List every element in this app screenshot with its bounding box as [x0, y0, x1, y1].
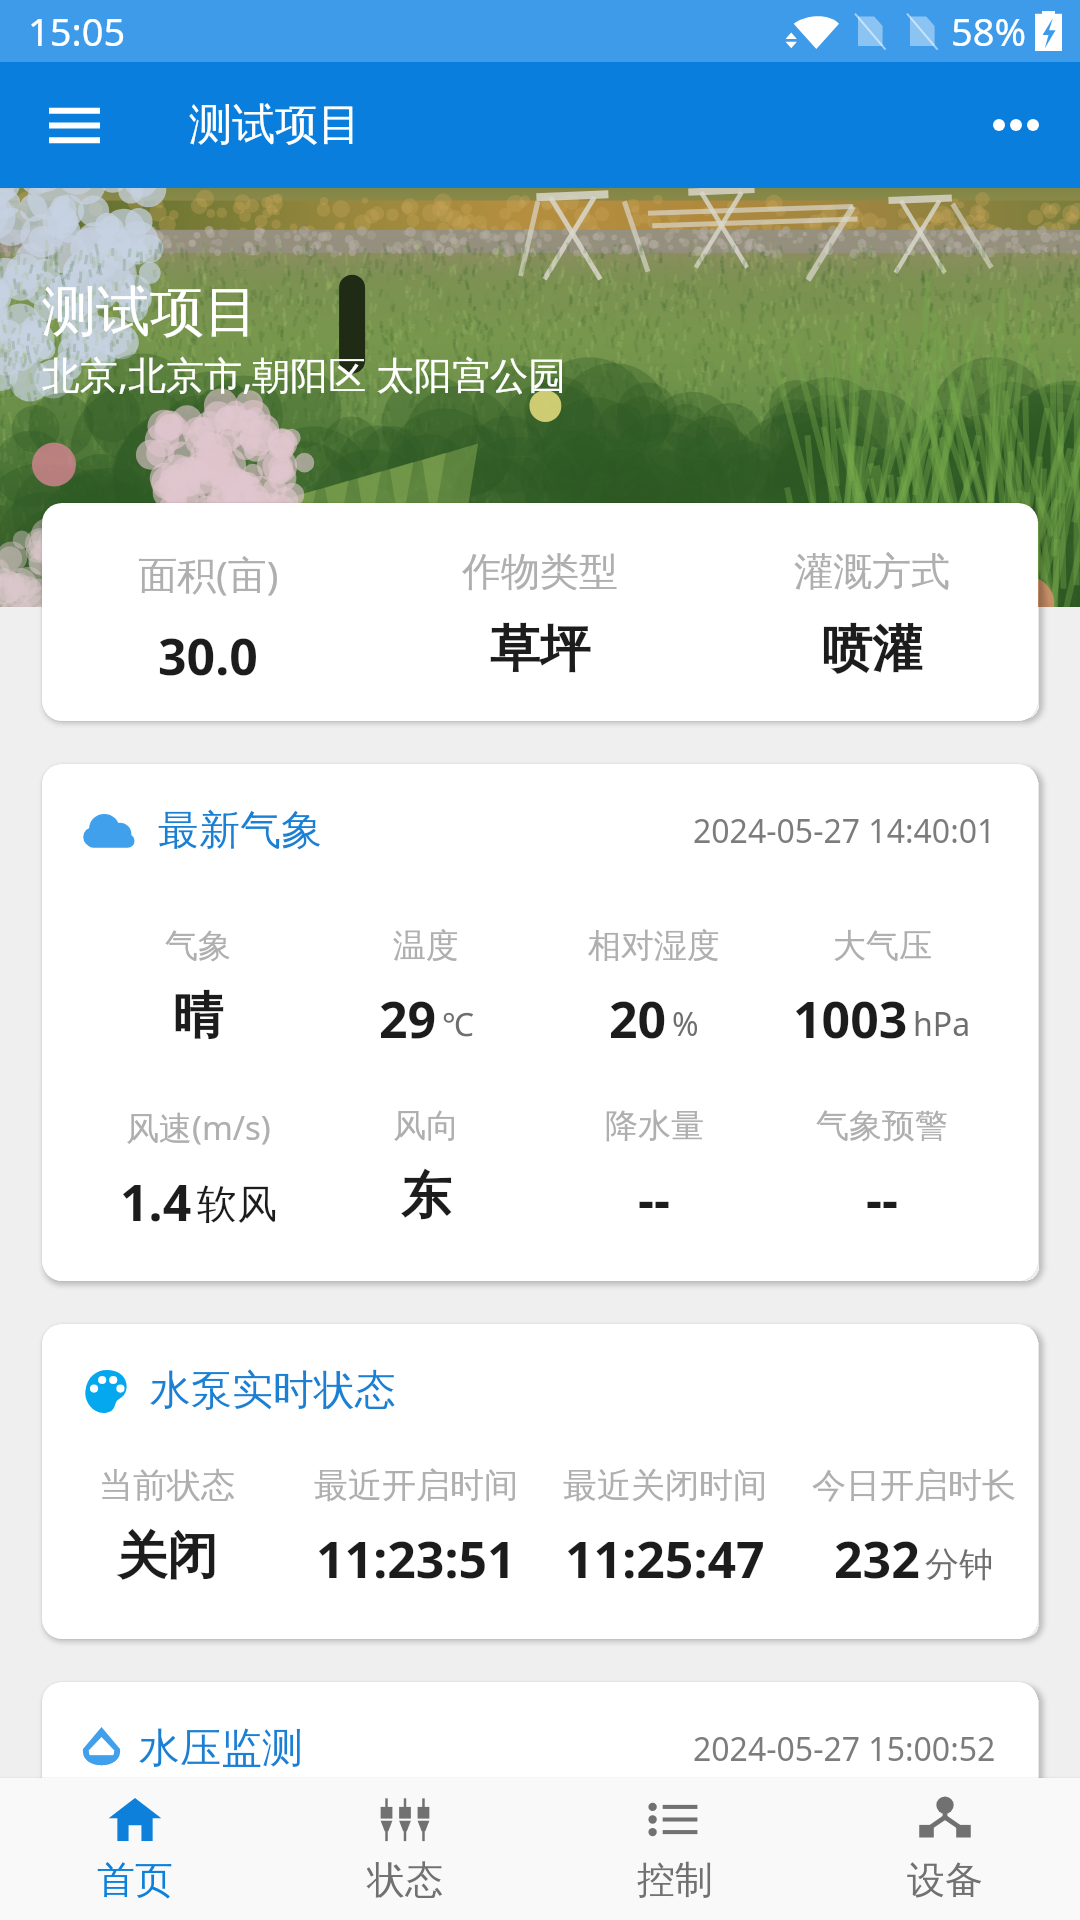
staticText: 1003	[793, 985, 908, 1053]
button[interactable]: 设备	[810, 1778, 1080, 1920]
staticText: 灌溉方式	[794, 547, 950, 596]
staticText: 232	[834, 1525, 920, 1593]
staticText: 水压监测	[139, 1723, 303, 1775]
staticText: 分钟	[925, 1543, 993, 1586]
button[interactable]: 首页	[0, 1778, 270, 1920]
staticText: %	[672, 1002, 699, 1046]
staticText: 相对湿度	[588, 925, 720, 967]
staticText: 测试项目	[189, 98, 361, 152]
staticText: 状态	[367, 1856, 443, 1904]
staticText: 风速(m/s)	[126, 1105, 271, 1150]
staticText: 30.0	[158, 622, 258, 690]
staticText: 最新气象	[158, 805, 322, 857]
button[interactable]: 控制	[540, 1778, 810, 1920]
staticText: 气象	[165, 925, 231, 967]
staticText: 草坪	[490, 618, 590, 681]
staticText: 20	[609, 985, 667, 1053]
button[interactable]: 水泵实时状态	[42, 1324, 1038, 1639]
staticText: 11:23:51	[316, 1525, 516, 1593]
staticText: 温度	[393, 925, 459, 967]
button[interactable]: 面积(亩)	[42, 503, 1038, 721]
staticText: 今日开启时长	[812, 1464, 1016, 1507]
staticText: --	[638, 1165, 670, 1233]
button[interactable]: Menu	[32, 83, 116, 167]
staticText: 风向	[393, 1105, 459, 1147]
staticText: 大气压	[833, 925, 932, 967]
staticText: 晴	[173, 985, 223, 1048]
staticText: 11:25:47	[565, 1525, 765, 1593]
staticText: 喷灌	[822, 618, 922, 681]
staticText: 控制	[637, 1856, 713, 1904]
button[interactable]: 水压监测	[42, 1682, 1038, 1920]
staticText: 水泵实时状态	[150, 1365, 396, 1417]
staticText: 首页	[97, 1856, 173, 1904]
staticText: 29	[379, 985, 437, 1053]
staticText: 作物类型	[462, 547, 618, 596]
staticText: 58%	[951, 5, 1027, 57]
staticText: 北京,北京市,朝阳区 太阳宫公园	[42, 348, 567, 400]
staticText: hPa	[913, 1002, 971, 1046]
staticText: 气象预警	[816, 1105, 948, 1147]
staticText: 东	[401, 1165, 451, 1228]
staticText: 1.4	[120, 1168, 192, 1236]
button[interactable]: More options	[974, 85, 1058, 165]
staticText: 关闭	[117, 1525, 217, 1588]
button[interactable]: 状态	[270, 1778, 540, 1920]
staticText: 软风	[197, 1179, 277, 1229]
staticText: 最近开启时间	[314, 1464, 518, 1507]
staticText: 15:05	[28, 5, 126, 57]
staticText: 2024-05-27 14:40:01	[693, 809, 996, 853]
staticText: 测试项目	[42, 278, 258, 346]
staticText: 面积(亩)	[138, 547, 279, 600]
staticText: 设备	[907, 1856, 983, 1904]
button[interactable]: 最新气象	[42, 764, 1038, 1281]
staticText: ℃	[442, 1002, 474, 1046]
staticText: 当前状态	[99, 1464, 235, 1507]
button[interactable]: Project photo 测试项目	[0, 188, 1080, 607]
staticText: 降水量	[605, 1105, 704, 1147]
staticText: 最近关闭时间	[563, 1464, 767, 1507]
staticText: --	[866, 1165, 898, 1233]
staticText: 2024-05-27 15:00:52	[693, 1727, 996, 1771]
